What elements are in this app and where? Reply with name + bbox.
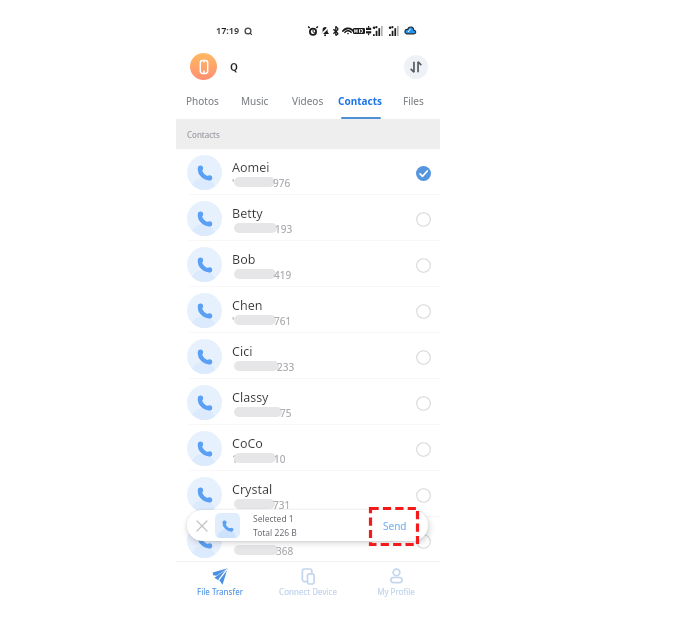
staticText: Videos xyxy=(292,94,324,108)
staticText: Contacts xyxy=(338,94,383,108)
button[interactable]: Daniel xyxy=(176,517,440,563)
button[interactable]: Betty xyxy=(176,195,440,241)
staticText: Q xyxy=(230,60,238,74)
button[interactable]: Classy xyxy=(176,379,440,425)
staticText: 193 xyxy=(275,222,293,234)
button[interactable]: Chen xyxy=(176,287,440,333)
button[interactable]: Select xyxy=(413,393,433,413)
button[interactable]: Send xyxy=(362,510,428,541)
staticText: Cici xyxy=(232,343,253,360)
staticText: 761 xyxy=(274,314,292,326)
button[interactable]: My Profile xyxy=(352,562,440,603)
staticText: Send xyxy=(383,519,407,533)
staticText: Bob xyxy=(232,251,256,268)
button[interactable]: Select xyxy=(413,255,433,275)
staticText: 17:19 xyxy=(216,24,240,36)
staticText: Contacts xyxy=(187,129,220,140)
button[interactable]: Close xyxy=(194,518,210,534)
staticText: Music xyxy=(241,94,269,108)
button[interactable]: Photos xyxy=(176,89,228,119)
staticText: My Profile xyxy=(377,586,415,597)
button[interactable]: Files xyxy=(387,89,440,119)
button[interactable]: File Transfer xyxy=(176,562,264,603)
button[interactable]: Select xyxy=(413,301,433,321)
staticText: Betty xyxy=(232,205,263,222)
staticText: Aomei xyxy=(232,159,270,176)
staticText: ' xyxy=(232,176,235,188)
staticText: 419 xyxy=(274,268,292,280)
button[interactable]: Connect Device xyxy=(264,562,352,603)
button[interactable]: Crystal xyxy=(176,471,440,517)
staticText: File Transfer xyxy=(197,586,243,597)
staticText: Files xyxy=(403,94,424,108)
button[interactable]: Music xyxy=(228,89,281,119)
staticText: 233 xyxy=(277,360,295,372)
staticText: Classy xyxy=(232,389,269,406)
button[interactable]: Sort xyxy=(404,55,428,79)
button[interactable]: Bob xyxy=(176,241,440,287)
staticText: Connect Device xyxy=(279,586,337,597)
staticText: CoCo xyxy=(232,435,263,452)
button[interactable]: Select xyxy=(413,439,433,459)
staticText: 75 xyxy=(280,406,292,418)
button[interactable]: Cici xyxy=(176,333,440,379)
staticText: Photos xyxy=(186,94,219,108)
staticText: 368 xyxy=(276,544,294,556)
staticText: Selected 1 xyxy=(253,513,294,525)
staticText: Total 226 B xyxy=(253,527,297,539)
button[interactable]: Selected xyxy=(413,163,433,183)
button[interactable]: CoCo xyxy=(176,425,440,471)
button[interactable]: My device xyxy=(190,53,217,80)
staticText: Crystal xyxy=(232,481,273,498)
button[interactable]: Aomei xyxy=(176,149,440,195)
button[interactable]: Contacts xyxy=(334,89,387,119)
button[interactable]: Videos xyxy=(281,89,334,119)
staticText: 976 xyxy=(273,176,291,188)
staticText: 1 xyxy=(232,452,238,464)
staticText: 731 xyxy=(273,498,291,510)
staticText: Daniel xyxy=(232,527,270,544)
button[interactable]: Select xyxy=(413,485,433,505)
staticText: ' xyxy=(232,314,235,326)
button[interactable]: Select xyxy=(413,347,433,367)
button[interactable]: Select xyxy=(413,209,433,229)
staticText: Chen xyxy=(232,297,263,314)
button[interactable]: Select xyxy=(413,531,433,551)
staticText: 10 xyxy=(274,452,286,464)
